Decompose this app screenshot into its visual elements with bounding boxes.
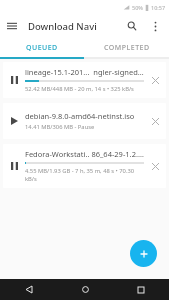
button[interactable]: Resume — [3, 103, 166, 139]
button[interactable]: Resume — [3, 108, 25, 134]
button[interactable]: Back — [0, 279, 57, 300]
button[interactable]: QUEUED — [0, 38, 84, 57]
staticText: COMPLETED — [104, 43, 150, 53]
staticText: 10:57 — [151, 4, 166, 11]
button[interactable]: COMPLETED — [84, 38, 169, 57]
staticText: 14.41 MB/306 MB - Pause — [25, 123, 95, 131]
button[interactable]: Pause — [3, 153, 25, 179]
button[interactable]: Cancel download — [144, 108, 166, 134]
button[interactable]: Cancel download — [144, 67, 166, 93]
staticText: 50% — [132, 4, 143, 11]
staticText: Fedora-Workstati.. 86_64-29-1.2.iso — [25, 149, 144, 159]
button[interactable]: Home — [57, 279, 113, 300]
staticText: debian-9.8.0-amd64-netinst.iso — [25, 111, 135, 121]
button[interactable]: Navigation drawer — [0, 14, 24, 38]
button[interactable]: Add download — [130, 240, 157, 267]
button[interactable]: More options — [144, 15, 166, 37]
staticText: 4.55 MB/1.93 GB - 7 h, 35 m, 48 s • 70.3… — [25, 167, 144, 183]
button[interactable]: Pause — [3, 62, 166, 98]
button[interactable]: Pause — [3, 67, 25, 93]
button[interactable]: Cancel download — [144, 153, 166, 179]
staticText: Download Navi — [28, 20, 97, 33]
button[interactable]: Search — [120, 14, 144, 38]
button[interactable]: Recent apps — [113, 279, 169, 300]
staticText: 52.42 MB/448 MB - 20 m, 14 s • 325 kB/s — [25, 85, 134, 93]
button[interactable]: Pause — [3, 144, 166, 188]
staticText: QUEUED — [26, 43, 58, 53]
staticText: lineage-15.1-201... ngler-signed.zip — [25, 67, 144, 77]
